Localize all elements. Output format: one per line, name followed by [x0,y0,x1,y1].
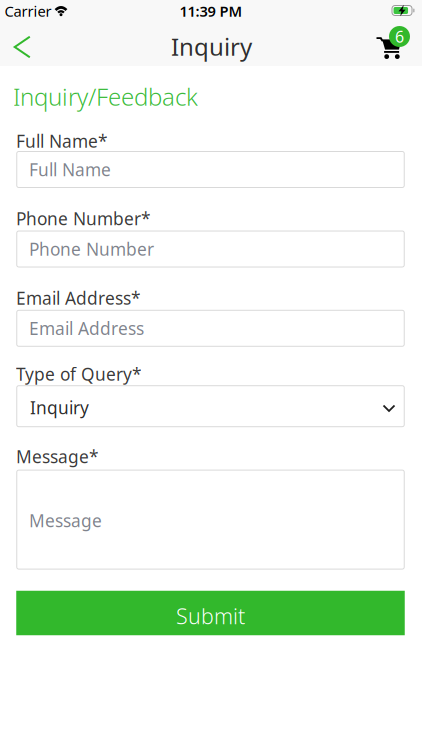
staticText: Message* [16,445,99,468]
staticText: Phone Number* [16,207,151,230]
staticText: Type of Query* [16,362,142,385]
staticText: Full Name* [16,129,108,152]
staticText: Email Address [29,317,144,340]
button[interactable]: Phone Number [16,230,405,267]
staticText: Message [29,509,102,532]
staticText: Full Name [29,158,111,181]
staticText: Inquiry [30,396,89,419]
button[interactable]: Message [16,470,405,570]
button[interactable]: Cart [376,23,410,69]
staticText: Carrier [4,1,51,21]
button[interactable]: Email Address [16,310,405,347]
staticText: Email Address* [16,286,141,309]
staticText: Inquiry [171,31,252,62]
staticText: Inquiry/Feedback [13,81,198,112]
staticText: 6 [395,26,404,47]
button[interactable]: Back [13,35,31,58]
button[interactable]: Type of Query [16,385,405,427]
button[interactable]: Full Name [16,151,405,188]
button[interactable]: Submit [16,591,405,635]
staticText: 11:39 PM [179,1,242,21]
staticText: Phone Number [29,237,154,260]
staticText: Submit [176,602,245,630]
